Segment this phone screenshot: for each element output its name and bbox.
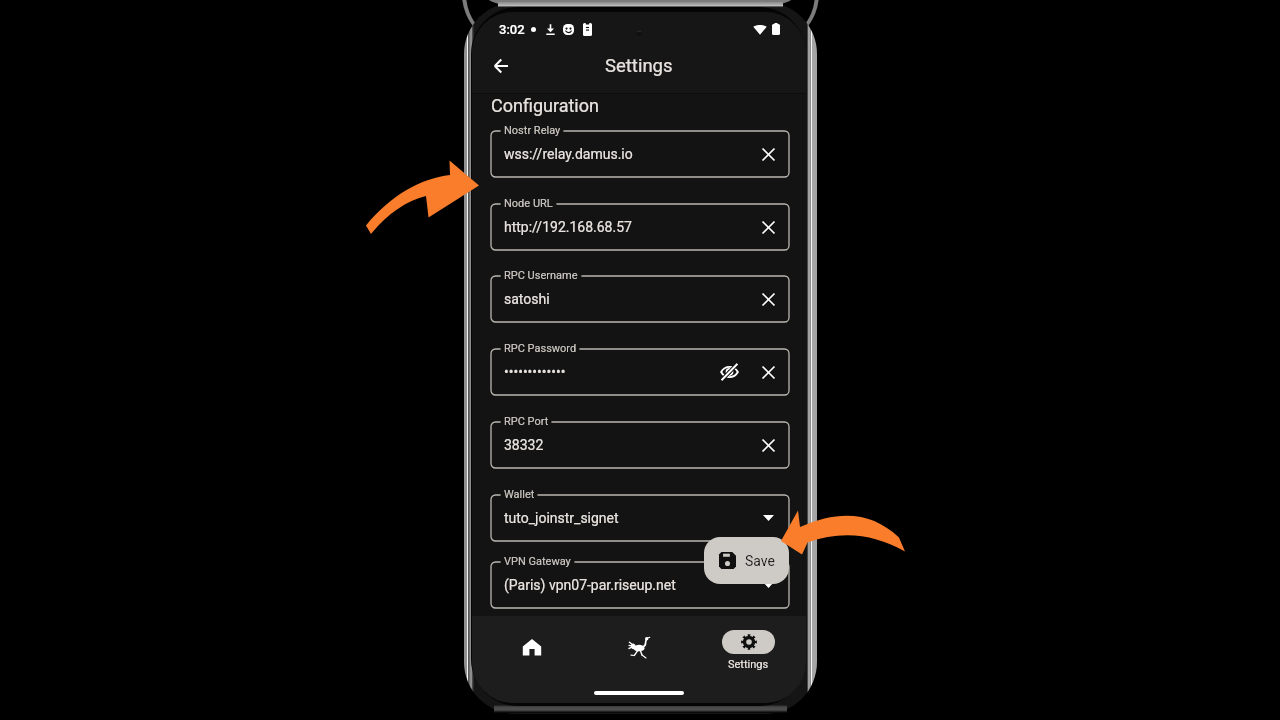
staticText: http://192.168.68.57 bbox=[504, 219, 632, 235]
button[interactable]: Open dropdown bbox=[756, 506, 780, 530]
button[interactable]: Nostr Relay bbox=[491, 131, 789, 177]
button[interactable]: Pools bbox=[606, 630, 672, 654]
staticText: RPC Port bbox=[504, 415, 549, 428]
button[interactable]: Clear text bbox=[756, 215, 780, 239]
staticText: Settings bbox=[728, 658, 769, 671]
staticText: Settings bbox=[605, 55, 673, 77]
staticText: 3:02 bbox=[499, 22, 525, 37]
button[interactable]: Save bbox=[704, 537, 789, 584]
staticText: ••••••••••••• bbox=[504, 364, 566, 380]
button[interactable]: Clear text bbox=[756, 433, 780, 457]
staticText: VPN Gateway bbox=[504, 555, 571, 568]
button[interactable]: Clear text bbox=[756, 360, 780, 384]
other: Pools bbox=[630, 637, 650, 659]
staticText: Save bbox=[745, 553, 775, 569]
staticText: Nostr Relay bbox=[504, 124, 561, 137]
staticText: Wallet bbox=[504, 488, 535, 501]
staticText: 38332 bbox=[504, 437, 544, 453]
button[interactable]: VPN Gateway bbox=[491, 562, 789, 608]
button[interactable]: Clear text bbox=[756, 287, 780, 311]
staticText: tuto_joinstr_signet bbox=[504, 510, 619, 526]
button[interactable]: RPC Username bbox=[491, 276, 789, 322]
button[interactable]: Back bbox=[482, 48, 520, 84]
staticText: (Paris) vpn07-par.riseup.net bbox=[504, 577, 676, 593]
button[interactable]: Home bbox=[498, 630, 564, 654]
button[interactable]: Wallet bbox=[491, 495, 789, 541]
staticText: RPC Username bbox=[504, 269, 578, 282]
staticText: satoshi bbox=[504, 291, 550, 307]
staticText: Configuration bbox=[491, 95, 599, 116]
staticText: RPC Password bbox=[504, 342, 577, 355]
button[interactable]: Settings bbox=[715, 630, 781, 671]
other: Home bbox=[522, 637, 542, 659]
staticText: wss://relay.damus.io bbox=[504, 146, 633, 162]
button[interactable]: Node URL bbox=[491, 204, 789, 250]
staticText: Node URL bbox=[504, 197, 553, 210]
button[interactable]: RPC Port bbox=[491, 422, 789, 468]
button[interactable]: Open dropdown bbox=[756, 573, 780, 597]
button[interactable]: RPC Password bbox=[491, 349, 789, 395]
button[interactable]: Show password bbox=[717, 360, 741, 384]
button[interactable]: Clear text bbox=[756, 142, 780, 166]
